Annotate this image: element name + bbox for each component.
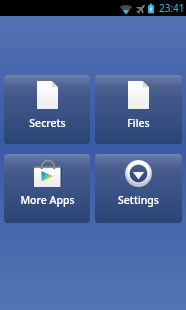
staticText: 23:41 xyxy=(159,1,185,15)
staticText: Secrets xyxy=(29,116,66,130)
button[interactable]: More Apps xyxy=(4,154,90,223)
staticText: Files xyxy=(127,116,150,130)
staticText: More Apps xyxy=(20,193,75,207)
button[interactable]: Files xyxy=(95,75,182,144)
other: Battery charging xyxy=(148,3,154,14)
button[interactable]: Settings xyxy=(95,154,182,223)
button[interactable]: Secrets xyxy=(4,75,90,144)
staticText: Settings xyxy=(118,193,159,207)
other: Airplane mode xyxy=(137,3,146,14)
other: Wi-Fi signal xyxy=(120,3,132,14)
